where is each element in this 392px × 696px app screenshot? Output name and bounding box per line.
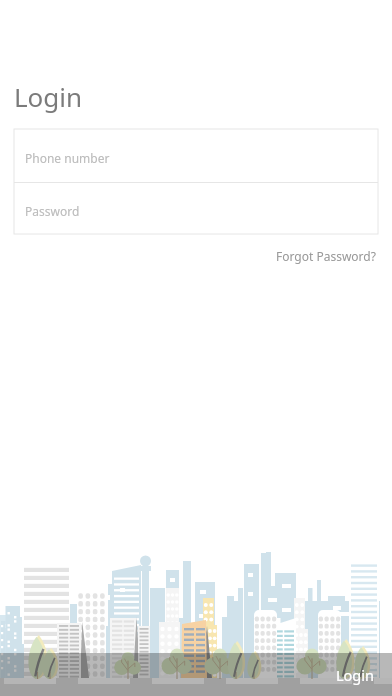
staticText: Forgot Password?	[276, 248, 376, 264]
staticText: Login	[336, 665, 374, 685]
button[interactable]: Forgot Password?	[276, 243, 392, 266]
button[interactable]: Login	[0, 653, 392, 696]
staticText: Password	[25, 203, 80, 219]
button[interactable]: Phone number	[14, 129, 378, 182]
staticText: Phone number	[25, 150, 110, 166]
staticText: Login	[14, 79, 83, 114]
button[interactable]: Password	[14, 183, 378, 234]
